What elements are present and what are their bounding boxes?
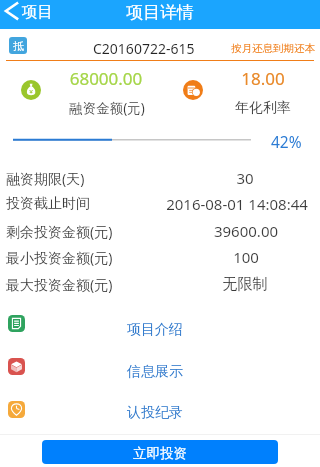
staticText: 39600.00 bbox=[156, 221, 320, 241]
button[interactable]: 立即投资 bbox=[42, 440, 278, 464]
staticText: 无限制 bbox=[155, 275, 320, 294]
button[interactable]: 认投纪录 bbox=[0, 388, 320, 430]
button[interactable]: 项目介绍 bbox=[0, 302, 320, 344]
staticText: 30 bbox=[155, 168, 320, 188]
button[interactable]: Back bbox=[0, 0, 60, 29]
staticText: 100 bbox=[156, 247, 320, 267]
staticText: 项目 bbox=[22, 2, 53, 22]
button[interactable]: 信息展示 bbox=[0, 345, 320, 387]
staticText: 投资截止时间 bbox=[6, 195, 90, 213]
staticText: 立即投资 bbox=[133, 445, 187, 462]
staticText: 认投纪录 bbox=[127, 404, 183, 422]
staticText: 剩余投资金额(元) bbox=[6, 222, 113, 241]
staticText: 信息展示 bbox=[127, 363, 183, 381]
staticText: 项目详情 bbox=[126, 2, 194, 23]
staticText: 最小投资金额(元) bbox=[6, 248, 113, 267]
staticText: 融资金额(元) bbox=[27, 99, 187, 117]
staticText: 年化利率 bbox=[183, 99, 320, 117]
staticText: 最大投资金额(元) bbox=[6, 275, 113, 294]
staticText: 按月还息到期还本 bbox=[231, 42, 315, 55]
staticText: 18.00 bbox=[183, 67, 320, 90]
staticText: 项目介绍 bbox=[127, 321, 183, 339]
staticText: 抵 bbox=[13, 39, 24, 53]
staticText: 2016-08-01 14:08:44 bbox=[147, 194, 320, 214]
staticText: C20160722-615 bbox=[93, 39, 195, 58]
staticText: 42% bbox=[271, 131, 302, 152]
staticText: 融资期限(天) bbox=[6, 169, 85, 188]
staticText: 68000.00 bbox=[26, 67, 186, 90]
